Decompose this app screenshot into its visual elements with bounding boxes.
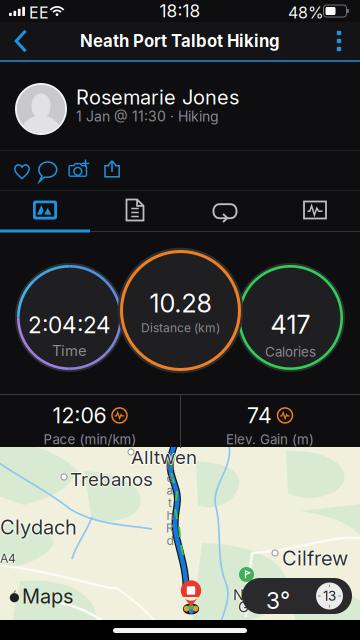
button[interactable]: Charts xyxy=(270,191,360,229)
staticText: Alltwen xyxy=(131,446,197,469)
staticText: Neath Port Talbot Hiking xyxy=(80,31,280,51)
staticText: Cilfrew xyxy=(283,546,349,570)
staticText: N xyxy=(165,458,174,473)
staticText: Alltwen xyxy=(131,447,197,470)
staticText: Alltwen xyxy=(131,445,197,468)
staticText: Neath xyxy=(233,586,275,604)
staticText: Clydach xyxy=(0,516,77,540)
button[interactable]: Details xyxy=(90,191,180,229)
staticText: Cilfrew xyxy=(282,547,348,571)
staticText: 48% xyxy=(288,3,324,22)
staticText: Golf xyxy=(238,597,267,615)
staticText: Neath xyxy=(233,585,275,603)
staticText: 417 xyxy=(270,309,310,340)
staticText: Golf xyxy=(238,599,267,617)
staticText: Maps xyxy=(22,584,73,608)
staticText: A4 xyxy=(0,550,16,564)
staticText: Neath xyxy=(233,587,275,605)
staticText: Distance (km) xyxy=(141,321,220,335)
staticText: Clydach xyxy=(0,515,77,539)
button[interactable]: More options xyxy=(318,22,360,60)
button[interactable]: Back xyxy=(0,22,42,60)
staticText: 12:06 xyxy=(52,402,106,428)
staticText: Golf xyxy=(239,598,268,616)
staticText: Elev. Gain (m) xyxy=(226,431,314,447)
staticText: 18:18 xyxy=(159,0,200,21)
button[interactable]: Share xyxy=(98,152,130,191)
staticText: Alltwen xyxy=(130,446,196,469)
staticText: A4 xyxy=(0,552,16,566)
staticText: Trebanos xyxy=(70,467,153,490)
staticText: Golf xyxy=(238,598,267,616)
button[interactable]: Comment xyxy=(32,152,64,191)
staticText: Golf xyxy=(237,598,266,616)
staticText: Trebanos xyxy=(69,468,152,491)
staticText: e xyxy=(166,471,173,485)
staticText: Pace (min/km) xyxy=(43,431,136,447)
staticText: Cilfrew xyxy=(282,546,348,570)
staticText: 2:04:24 xyxy=(28,311,111,339)
button[interactable]: Summary xyxy=(0,191,90,229)
staticText: Neath xyxy=(234,586,276,604)
staticText: 3° xyxy=(266,587,290,614)
staticText: A4 xyxy=(0,551,15,565)
staticText: Trebanos xyxy=(71,468,154,491)
staticText: d xyxy=(166,533,173,548)
staticText: Clydach xyxy=(1,515,78,539)
staticText: Alltwen xyxy=(132,446,198,469)
staticText: Clydach xyxy=(0,514,77,538)
staticText: Cilfrew xyxy=(282,545,348,569)
staticText: Neath xyxy=(232,586,274,604)
staticText: EE xyxy=(29,3,49,22)
staticText: R xyxy=(166,521,174,535)
staticText: A4 xyxy=(0,551,16,565)
staticText: A4 xyxy=(1,551,17,565)
staticText: h xyxy=(166,508,173,523)
staticText: 1 Jan @ 11:30 · Hiking xyxy=(76,108,219,125)
staticText: Rosemarie Jones xyxy=(76,85,239,109)
staticText: 74 xyxy=(247,402,272,428)
staticText: 13 xyxy=(323,588,336,604)
staticText: a xyxy=(166,483,173,498)
button[interactable]: Add photo xyxy=(64,152,96,191)
staticText: Trebanos xyxy=(70,469,153,492)
staticText: Time xyxy=(52,342,87,359)
staticText: 10.28 xyxy=(149,288,211,319)
button[interactable]: Laps xyxy=(180,191,270,229)
staticText: Calories xyxy=(265,344,316,360)
button[interactable]: Like xyxy=(6,152,38,191)
staticText: Clydach xyxy=(0,515,76,539)
staticText: t xyxy=(168,496,172,510)
staticText: Trebanos xyxy=(70,468,153,491)
staticText: Cilfrew xyxy=(281,546,347,570)
